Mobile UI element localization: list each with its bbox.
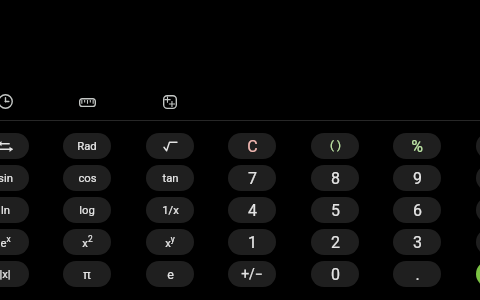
button[interactable]: sin [0, 165, 29, 191]
button[interactable]: More functions [151, 83, 189, 121]
button[interactable]: 1 [228, 229, 276, 255]
button[interactable]: 7 [228, 165, 276, 191]
button[interactable]: History [0, 82, 24, 120]
button[interactable]: 3 [393, 229, 441, 255]
button[interactable]: 2 [311, 229, 359, 255]
staticText: π [83, 267, 91, 282]
button[interactable]: π [63, 261, 111, 287]
button[interactable]: Equals [476, 261, 480, 287]
button[interactable]: xy [146, 229, 194, 255]
button[interactable]: 0 [311, 261, 359, 287]
staticText: e [167, 267, 174, 282]
staticText: xy [165, 234, 175, 249]
button[interactable]: e [146, 261, 194, 287]
staticText: 1 [248, 233, 257, 252]
staticText: |x| [0, 268, 11, 281]
button[interactable]: % [393, 133, 441, 159]
staticText: 1/x [162, 204, 179, 217]
staticText: C [247, 137, 258, 156]
button[interactable]: 1/x [146, 197, 194, 223]
button[interactable]: − [476, 197, 480, 223]
staticText: 4 [248, 201, 257, 220]
staticText: 3 [413, 233, 422, 252]
staticText: % [411, 137, 423, 156]
button[interactable]: +/− [228, 261, 276, 287]
button[interactable]: + [476, 229, 480, 255]
button[interactable]: log [63, 197, 111, 223]
staticText: 6 [413, 201, 422, 220]
button[interactable]: x2 [63, 229, 111, 255]
button[interactable]: × [476, 165, 480, 191]
button[interactable]: Rad [63, 133, 111, 159]
staticText: 7 [248, 169, 257, 188]
button[interactable]: ÷ [476, 133, 480, 159]
staticText: 5 [331, 201, 340, 220]
staticText: sin [0, 172, 13, 185]
staticText: x2 [82, 234, 93, 249]
staticText: +/− [241, 266, 263, 282]
staticText: 9 [413, 169, 422, 188]
staticText: 2 [331, 233, 340, 252]
button[interactable]: cos [63, 165, 111, 191]
button[interactable]: 6 [393, 197, 441, 223]
button[interactable] [146, 133, 194, 159]
staticText: 8 [331, 169, 340, 188]
button[interactable]: 5 [311, 197, 359, 223]
staticText: tan [162, 172, 179, 185]
button[interactable]: . [393, 261, 441, 287]
staticText: ( ) [330, 138, 341, 151]
staticText: ex [0, 234, 11, 249]
staticText: log [79, 204, 95, 217]
staticText: Rad [77, 140, 97, 153]
staticText: 0 [331, 265, 340, 284]
button[interactable]: ln [0, 197, 29, 223]
staticText: cos [78, 172, 97, 185]
button[interactable]: ( ) [311, 133, 359, 159]
button[interactable]: 8 [311, 165, 359, 191]
button[interactable]: |x| [0, 261, 29, 287]
staticText: . [415, 265, 420, 284]
button[interactable]: Unit converter [68, 83, 106, 121]
button[interactable]: 9 [393, 165, 441, 191]
staticText: ln [1, 204, 10, 217]
button[interactable]: C [228, 133, 276, 159]
button[interactable]: ex [0, 229, 29, 255]
button[interactable] [0, 133, 29, 159]
button[interactable]: 4 [228, 197, 276, 223]
button[interactable]: tan [146, 165, 194, 191]
